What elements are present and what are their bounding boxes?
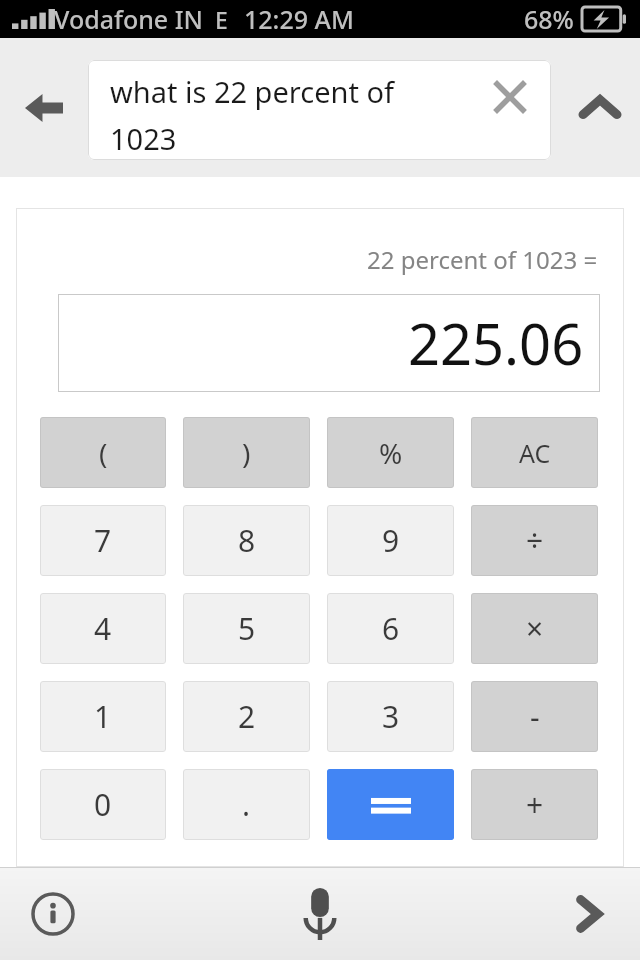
staticText: 1 <box>94 696 112 737</box>
staticText: 225.06 <box>408 305 584 381</box>
button[interactable]: 0 <box>40 769 166 840</box>
staticText: 7 <box>94 520 112 561</box>
button[interactable]: Next <box>558 883 620 945</box>
staticText: 4 <box>94 608 112 649</box>
staticText: 5 <box>238 608 256 649</box>
button[interactable]: + <box>471 769 598 840</box>
staticText: 68% <box>524 2 574 36</box>
button[interactable]: what is 22 percent of <box>88 60 551 160</box>
button[interactable]: Clear <box>479 66 541 128</box>
button[interactable]: 6 <box>327 593 454 664</box>
button[interactable]: × <box>471 593 598 664</box>
button[interactable]: Collapse <box>570 78 630 138</box>
staticText: 0 <box>94 784 112 825</box>
staticText: . <box>242 784 251 825</box>
button[interactable]: Info <box>22 883 84 945</box>
button[interactable]: 7 <box>40 505 166 576</box>
staticText: × <box>526 608 544 649</box>
staticText: 6 <box>382 608 400 649</box>
staticText: 2 <box>238 696 256 737</box>
button[interactable]: . <box>183 769 310 840</box>
staticText: E <box>215 4 228 35</box>
button[interactable]: 8 <box>183 505 310 576</box>
button[interactable]: 9 <box>327 505 454 576</box>
staticText: ) <box>242 434 251 472</box>
button[interactable]: 1 <box>40 681 166 752</box>
staticText: 1023 <box>110 119 177 158</box>
button[interactable]: Back <box>14 78 74 138</box>
staticText: ( <box>99 434 108 472</box>
button[interactable]: ) <box>183 417 310 488</box>
staticText: 3 <box>382 696 400 737</box>
button[interactable]: 2 <box>183 681 310 752</box>
button[interactable]: - <box>471 681 598 752</box>
button[interactable]: AC <box>471 417 598 488</box>
button[interactable]: ÷ <box>471 505 598 576</box>
button[interactable]: Voice search <box>280 874 360 954</box>
staticText: Vodafone IN <box>54 2 203 36</box>
staticText: ÷ <box>526 520 544 561</box>
staticText: what is 22 percent of <box>110 72 394 111</box>
staticText: 12:29 AM <box>244 2 354 36</box>
button[interactable]: ( <box>40 417 166 488</box>
staticText: 8 <box>238 520 256 561</box>
button[interactable]: 4 <box>40 593 166 664</box>
button[interactable] <box>327 769 454 840</box>
button[interactable]: 3 <box>327 681 454 752</box>
button[interactable]: % <box>327 417 454 488</box>
staticText: % <box>379 434 403 472</box>
button[interactable]: 5 <box>183 593 310 664</box>
staticText: - <box>530 696 540 737</box>
staticText: 22 percent of 1023 = <box>367 243 598 276</box>
staticText: AC <box>519 436 551 470</box>
staticText: 9 <box>382 520 400 561</box>
staticText: + <box>526 784 544 825</box>
